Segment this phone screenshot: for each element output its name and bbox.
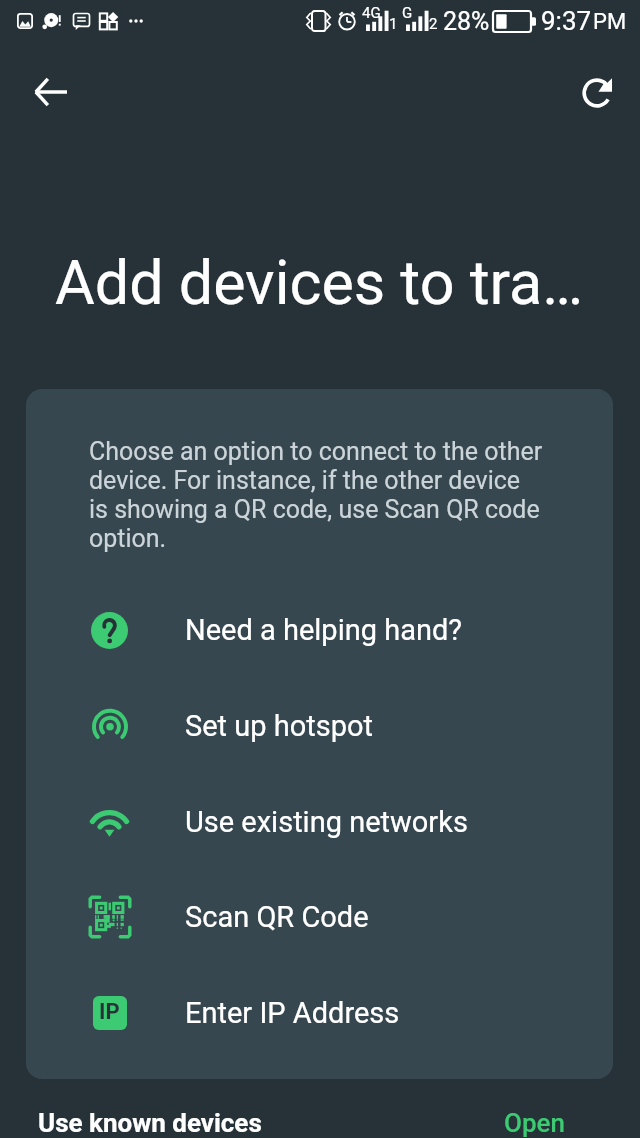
staticText: 1 [389, 15, 398, 33]
staticText: Need a helping hand? [185, 613, 463, 647]
staticText: 2 [429, 15, 438, 33]
staticText: Enter IP Address [185, 996, 400, 1030]
staticText: IP [99, 999, 120, 1025]
button[interactable]: Refresh [566, 62, 627, 123]
button[interactable]: Open [440, 1093, 640, 1138]
staticText: Add devices to tra… [55, 247, 584, 318]
staticText: Set up hotspot [185, 709, 374, 743]
button[interactable]: Use known devices [0, 1093, 330, 1138]
staticText: Scan QR Code [185, 900, 369, 934]
button[interactable]: Scan QR Code [26, 878, 613, 956]
staticText: Open [504, 1108, 565, 1138]
staticText: 4G [362, 4, 381, 22]
button[interactable]: IP [26, 974, 613, 1052]
staticText: 9:37 [541, 6, 592, 36]
button[interactable]: Set up hotspot [26, 687, 613, 765]
button[interactable]: Use existing networks [26, 783, 613, 861]
staticText: Use existing networks [185, 805, 468, 839]
staticText: Choose an option to connect to the other… [89, 437, 543, 553]
staticText: G [402, 4, 413, 22]
button[interactable]: Back [20, 62, 80, 122]
staticText: 28% [443, 7, 490, 36]
button[interactable]: Need a helping hand? [26, 591, 613, 669]
staticText: Use known devices [38, 1108, 262, 1138]
staticText: PM [593, 9, 627, 35]
